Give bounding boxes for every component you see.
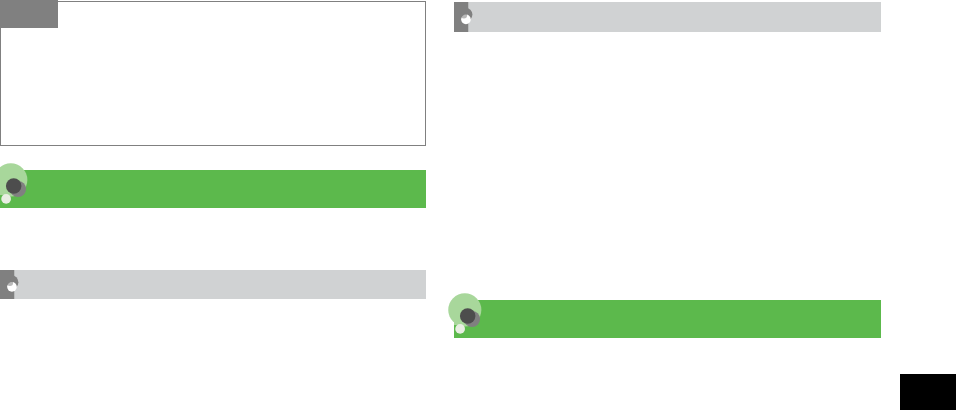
button[interactable]: Secondary action [0,270,426,299]
button[interactable]: Confirm action [454,300,881,338]
button[interactable]: Content panel [0,1,426,146]
button[interactable]: Section header [454,2,881,32]
button[interactable]: Primary action [0,170,426,208]
